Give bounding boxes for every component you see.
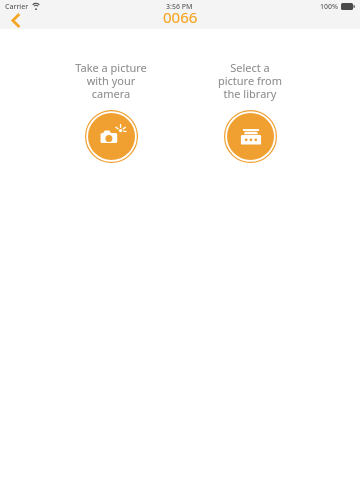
staticText: Take a picture with your camera bbox=[63, 60, 159, 101]
staticText: Carrier bbox=[5, 2, 29, 12]
staticText: Select a picture from the library bbox=[202, 60, 298, 101]
staticText: 3:56 PM bbox=[166, 2, 193, 12]
button[interactable]: Back bbox=[6, 11, 26, 29]
button[interactable]: Select a picture from the library bbox=[202, 60, 298, 163]
staticText: 100% bbox=[320, 2, 338, 12]
button[interactable]: Take a picture with your camera bbox=[63, 60, 159, 163]
staticText: 0066 bbox=[163, 7, 198, 27]
